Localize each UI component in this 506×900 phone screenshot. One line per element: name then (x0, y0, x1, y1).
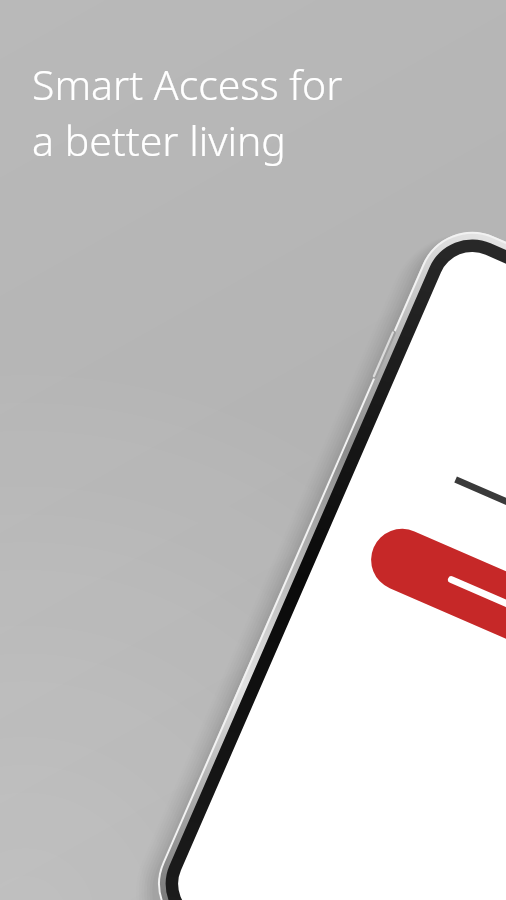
button[interactable]: Smart Access for (32, 56, 343, 168)
staticText: a better living (32, 112, 286, 168)
staticText: Smart Access for (32, 56, 343, 112)
